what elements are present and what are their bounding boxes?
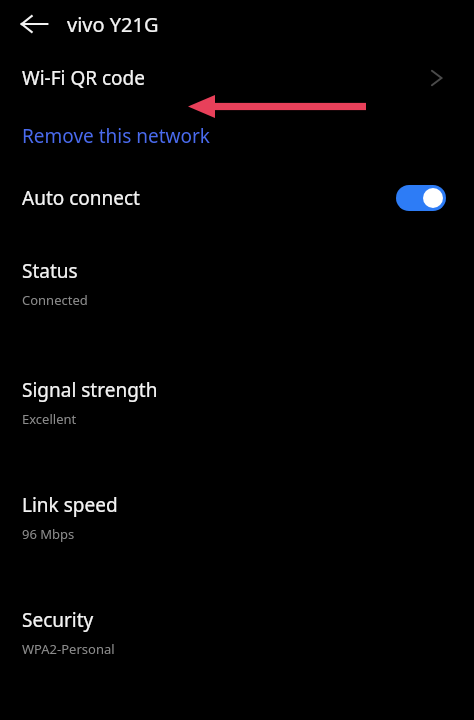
button[interactable]: Auto connect bbox=[0, 166, 474, 230]
button[interactable]: Link speed bbox=[0, 428, 474, 543]
staticText: Signal strength bbox=[22, 377, 158, 403]
staticText: Remove this network bbox=[22, 123, 211, 149]
button[interactable]: Signal strength bbox=[0, 309, 474, 428]
button[interactable]: Back bbox=[8, 6, 60, 42]
button[interactable]: Status bbox=[0, 230, 474, 309]
staticText: Wi-Fi QR code bbox=[22, 65, 146, 91]
staticText: Security bbox=[22, 607, 94, 633]
staticText: Excellent bbox=[22, 410, 77, 428]
button[interactable]: Auto connect toggle bbox=[396, 185, 446, 211]
staticText: Connected bbox=[22, 291, 88, 309]
staticText: Auto connect bbox=[22, 185, 396, 211]
button[interactable]: Remove this network bbox=[0, 106, 474, 166]
button[interactable]: Wi-Fi QR code bbox=[0, 48, 474, 106]
staticText: vivo Y21G bbox=[67, 11, 159, 38]
staticText: Status bbox=[22, 258, 78, 284]
staticText: Link speed bbox=[22, 492, 118, 518]
button[interactable]: Security bbox=[0, 543, 474, 658]
staticText: 96 Mbps bbox=[22, 525, 75, 543]
staticText: WPA2-Personal bbox=[22, 640, 115, 658]
